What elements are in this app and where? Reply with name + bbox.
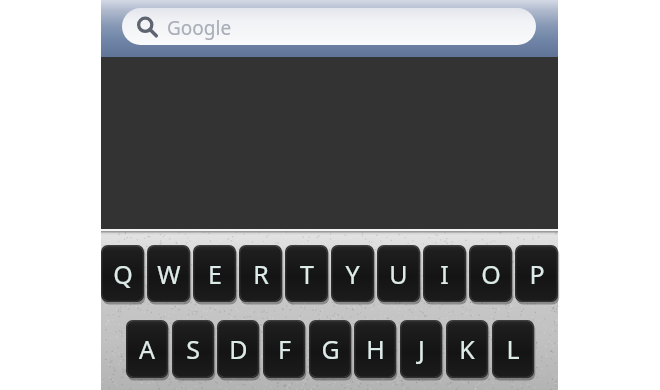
staticText: S bbox=[186, 332, 200, 366]
button[interactable]: K bbox=[446, 320, 488, 378]
staticText: J bbox=[418, 332, 425, 366]
staticText: R bbox=[253, 257, 269, 291]
button[interactable]: W bbox=[147, 245, 190, 302]
button[interactable]: U bbox=[377, 245, 420, 302]
button[interactable]: A bbox=[126, 320, 168, 378]
button[interactable]: G bbox=[309, 320, 351, 378]
button[interactable]: F bbox=[263, 320, 305, 378]
staticText: Q bbox=[113, 257, 133, 291]
staticText: D bbox=[229, 332, 248, 366]
button[interactable]: I bbox=[423, 245, 466, 302]
staticText: F bbox=[278, 332, 291, 366]
button[interactable]: O bbox=[469, 245, 512, 302]
button[interactable]: D bbox=[217, 320, 259, 378]
button[interactable]: S bbox=[172, 320, 214, 378]
button[interactable]: P bbox=[515, 245, 558, 302]
button[interactable]: J bbox=[400, 320, 442, 378]
staticText: I bbox=[440, 257, 449, 291]
staticText: H bbox=[366, 332, 385, 366]
staticText: A bbox=[139, 332, 155, 366]
button[interactable]: Google search bbox=[122, 8, 536, 45]
staticText: Google bbox=[167, 15, 232, 41]
button[interactable]: E bbox=[193, 245, 236, 302]
staticText: L bbox=[506, 332, 520, 366]
staticText: T bbox=[300, 257, 314, 291]
button[interactable]: L bbox=[492, 320, 534, 378]
button[interactable]: H bbox=[354, 320, 396, 378]
staticText: W bbox=[157, 257, 181, 291]
button[interactable]: Y bbox=[331, 245, 374, 302]
staticText: E bbox=[208, 257, 222, 291]
button[interactable]: T bbox=[285, 245, 328, 302]
staticText: G bbox=[321, 332, 340, 366]
staticText: U bbox=[389, 257, 408, 291]
staticText: P bbox=[529, 257, 545, 291]
button[interactable]: Q bbox=[101, 245, 144, 302]
staticText: K bbox=[459, 332, 475, 366]
button[interactable]: R bbox=[239, 245, 282, 302]
staticText: Y bbox=[345, 257, 360, 291]
staticText: O bbox=[481, 257, 501, 291]
